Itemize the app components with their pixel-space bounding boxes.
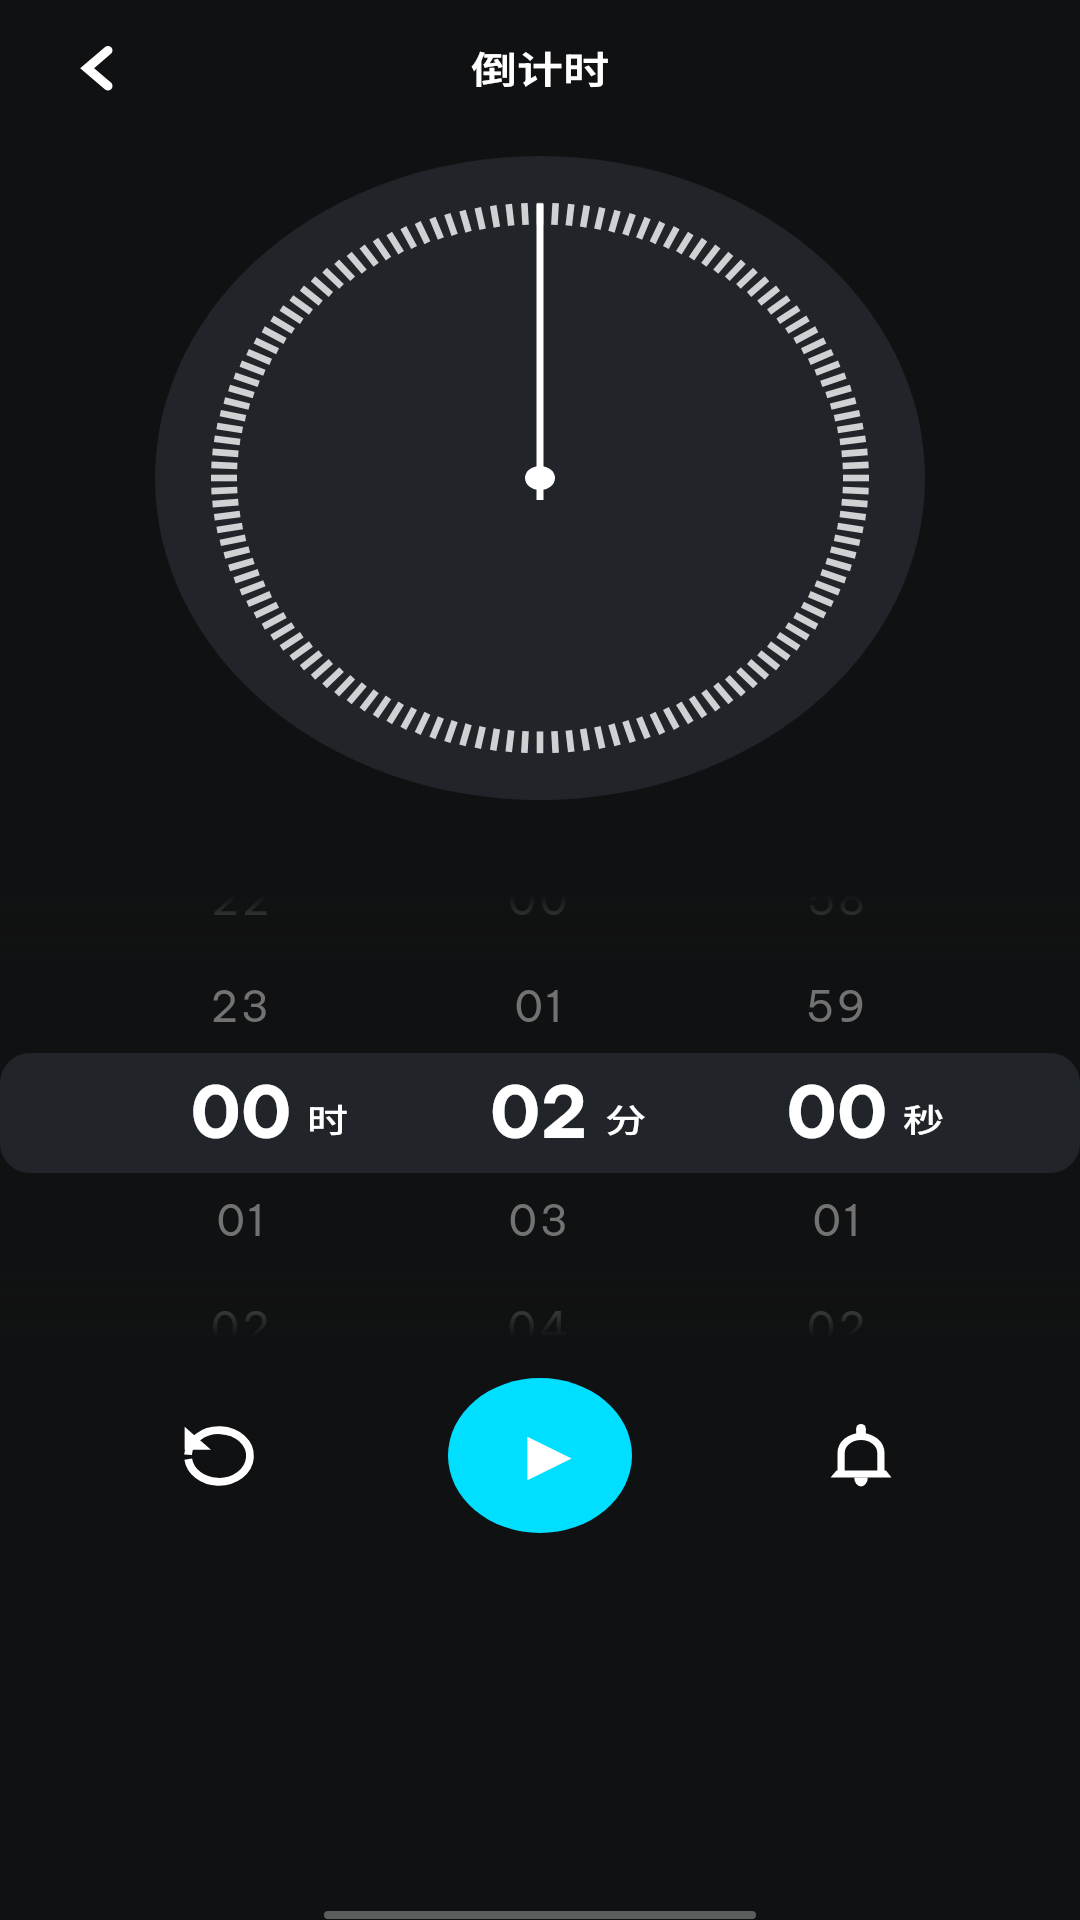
button[interactable]: 01	[727, 1172, 947, 1268]
staticText: 01	[812, 1193, 863, 1247]
staticText: 00	[507, 872, 571, 926]
button[interactable]: 04	[429, 1279, 649, 1375]
staticText: 02	[806, 1300, 869, 1354]
staticText: 02	[210, 1300, 273, 1354]
button[interactable]: 02	[727, 1279, 947, 1375]
button[interactable]: 59	[727, 958, 947, 1054]
staticText: 03	[508, 1193, 571, 1247]
button[interactable]: 00	[91, 1053, 391, 1173]
button[interactable]: Reset	[149, 1386, 289, 1526]
staticText: 01	[216, 1193, 267, 1247]
button[interactable]: 02	[131, 1279, 351, 1375]
staticText: 58	[807, 872, 868, 926]
button[interactable]: Start	[448, 1378, 632, 1533]
button[interactable]: 01	[131, 1172, 351, 1268]
staticText: 倒计时	[471, 40, 609, 95]
button[interactable]: 02	[389, 1053, 689, 1173]
staticText: 04	[507, 1300, 572, 1354]
button[interactable]: Alarm sound	[791, 1386, 931, 1526]
button[interactable]: 23	[131, 958, 351, 1054]
button[interactable]	[0, 1053, 1080, 1173]
button[interactable]: 03	[429, 1172, 649, 1268]
staticText: 22	[211, 872, 272, 926]
staticText: 00	[747, 1066, 927, 1157]
button[interactable]: 00	[687, 1053, 987, 1173]
button[interactable]: 01	[429, 958, 649, 1054]
staticText: 00	[151, 1066, 331, 1157]
staticText: 02	[449, 1066, 629, 1157]
staticText: 01	[514, 979, 565, 1033]
staticText: 23	[210, 979, 272, 1033]
staticText: 分	[605, 1094, 646, 1141]
staticText: 秒	[903, 1094, 944, 1141]
button[interactable]: Back	[58, 28, 138, 108]
staticText: 时	[307, 1094, 348, 1141]
staticText: 59	[806, 979, 868, 1033]
